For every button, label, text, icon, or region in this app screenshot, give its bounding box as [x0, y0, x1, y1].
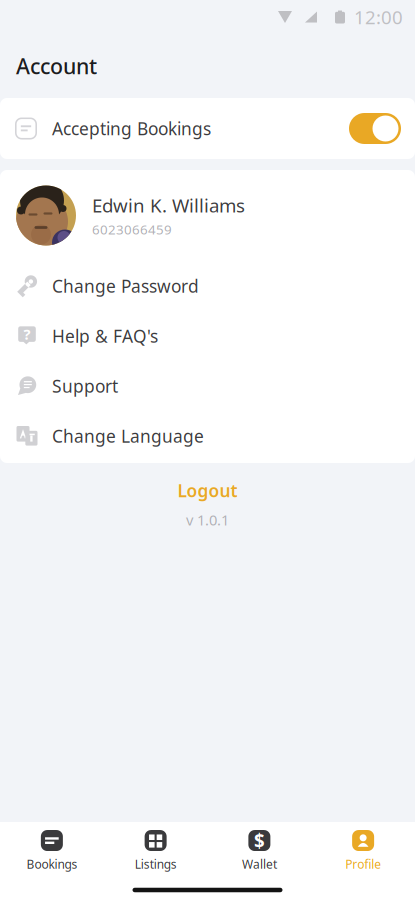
staticText: ?: [23, 324, 30, 344]
staticText: Change Password: [52, 274, 199, 297]
button[interactable]: Logout: [177, 479, 237, 502]
button[interactable]: Profile: [311, 830, 415, 872]
button[interactable]: Change Password: [0, 261, 415, 311]
staticText: Change Language: [52, 424, 204, 447]
staticText: Wallet: [242, 856, 277, 872]
staticText: Bookings: [26, 856, 77, 872]
staticText: v 1.0.1: [186, 510, 229, 529]
staticText: Accepting Bookings: [52, 117, 211, 140]
staticText: Edwin K. Williams: [92, 193, 245, 218]
staticText: 12:00: [354, 5, 403, 29]
staticText: Listings: [135, 856, 177, 872]
staticText: 6023066459: [92, 220, 172, 238]
button[interactable]: ?: [0, 311, 415, 361]
button[interactable]: Accepting Bookings: [0, 98, 415, 159]
staticText: Support: [52, 374, 118, 397]
button[interactable]: Support: [0, 361, 415, 411]
staticText: Help & FAQ's: [52, 324, 158, 347]
button[interactable]: Change Language: [0, 411, 415, 461]
staticText: $: [254, 828, 265, 853]
button[interactable]: Listings: [104, 830, 208, 872]
staticText: Profile: [345, 856, 381, 872]
staticText: Account: [16, 52, 97, 80]
button[interactable]: $: [207, 830, 311, 872]
button[interactable]: Bookings: [0, 830, 104, 872]
staticText: Logout: [177, 479, 237, 502]
button[interactable]: Edwin K. Williams: [0, 170, 415, 261]
